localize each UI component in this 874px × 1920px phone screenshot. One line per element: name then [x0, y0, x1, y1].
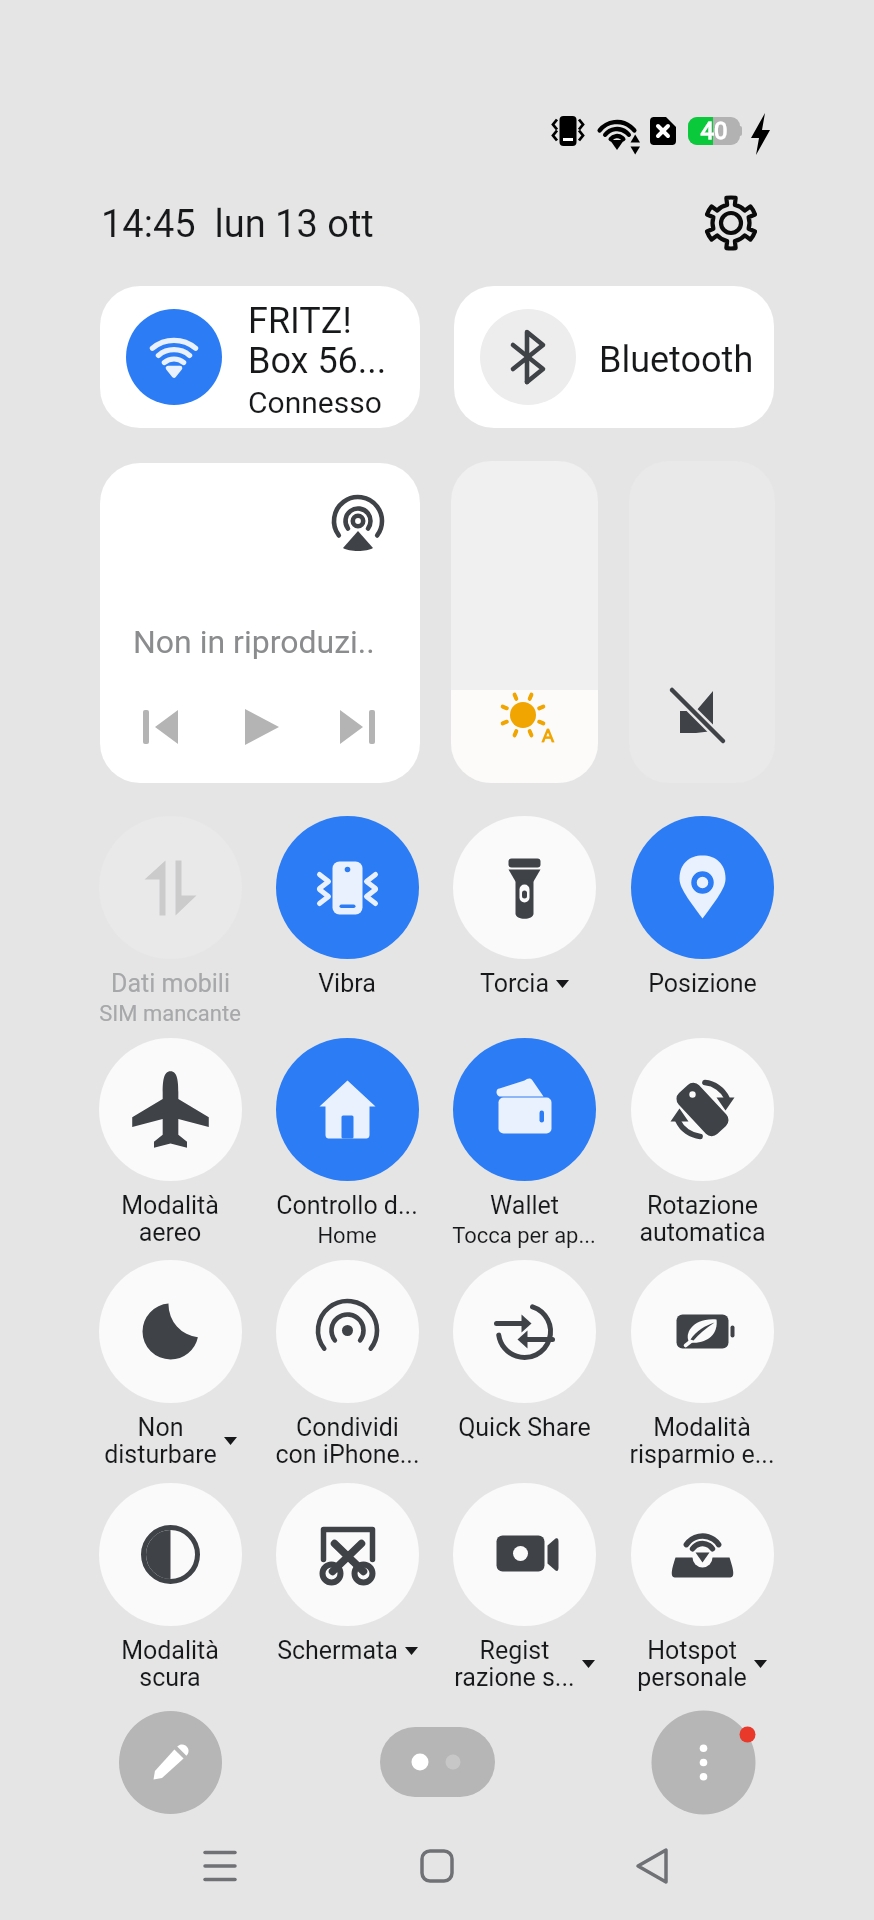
- button[interactable]: FRITZ!: [100, 286, 420, 428]
- button[interactable]: Regist razione s...: [429, 1483, 619, 1692]
- staticText: Non disturbare: [104, 1413, 217, 1469]
- button[interactable]: Volume muted: [629, 461, 775, 783]
- button[interactable]: Dati mobili: [75, 816, 265, 1024]
- staticText: Home: [317, 1223, 377, 1249]
- staticText: Connesso: [248, 385, 382, 420]
- button[interactable]: More options: [646, 1705, 761, 1820]
- staticText: Torcia: [480, 969, 549, 998]
- staticText: Quick Share: [458, 1413, 591, 1442]
- button[interactable]: Non in riproduzi..: [100, 463, 420, 783]
- button[interactable]: Condividi con iPhone...: [252, 1260, 442, 1469]
- button[interactable]: Wallet: [429, 1038, 619, 1246]
- button[interactable]: Schermata: [252, 1483, 442, 1665]
- button[interactable]: Rotazione automatica: [607, 1038, 797, 1247]
- button[interactable]: Edit tiles: [119, 1711, 222, 1814]
- button[interactable]: Posizione: [607, 816, 797, 998]
- button[interactable]: Non disturbare: [75, 1260, 265, 1469]
- staticText: Wallet: [490, 1191, 559, 1220]
- staticText: Dati mobili: [111, 969, 230, 998]
- button[interactable]: Bluetooth: [454, 286, 774, 428]
- button[interactable]: Modalità scura: [75, 1483, 265, 1692]
- staticText: Modalità scura: [121, 1636, 219, 1692]
- button[interactable]: Hotspot personale: [607, 1483, 797, 1692]
- staticText: Box 56...: [248, 340, 387, 382]
- staticText: Schermata: [277, 1636, 398, 1665]
- staticText: Non in riproduzi..: [133, 623, 375, 661]
- button[interactable]: Back: [613, 1836, 693, 1896]
- button[interactable]: Vibra: [252, 816, 442, 998]
- staticText: Condividi con iPhone...: [275, 1413, 420, 1469]
- staticText: Hotspot personale: [637, 1636, 747, 1692]
- button[interactable]: Modalità aereo: [75, 1038, 265, 1247]
- staticText: Rotazione automatica: [639, 1191, 766, 1247]
- staticText: Modalità aereo: [121, 1191, 219, 1247]
- button[interactable]: Home: [397, 1836, 477, 1896]
- button[interactable]: Torcia: [429, 816, 619, 998]
- staticText: Controllo d...: [276, 1191, 418, 1220]
- staticText: SIM mancante: [99, 1001, 241, 1027]
- button[interactable]: Brightness: [451, 461, 598, 783]
- staticText: Vibra: [318, 969, 376, 998]
- staticText: Modalità risparmio e...: [629, 1413, 775, 1469]
- staticText: FRITZ!: [248, 300, 352, 342]
- button[interactable]: Page indicator: [380, 1727, 495, 1797]
- button[interactable]: Modalità risparmio e...: [607, 1260, 797, 1469]
- staticText: Regist razione s...: [454, 1636, 575, 1692]
- staticText: 14:45 lun 13 ott: [101, 202, 374, 247]
- button[interactable]: Recents: [180, 1836, 260, 1896]
- staticText: Tocca per ap...: [452, 1223, 596, 1249]
- staticText: 40: [688, 117, 740, 145]
- button[interactable]: Settings: [701, 193, 761, 253]
- button[interactable]: Quick Share: [429, 1260, 619, 1442]
- staticText: Posizione: [648, 969, 757, 998]
- staticText: A: [538, 724, 558, 746]
- staticText: Bluetooth: [599, 339, 754, 381]
- button[interactable]: Controllo d...: [252, 1038, 442, 1246]
